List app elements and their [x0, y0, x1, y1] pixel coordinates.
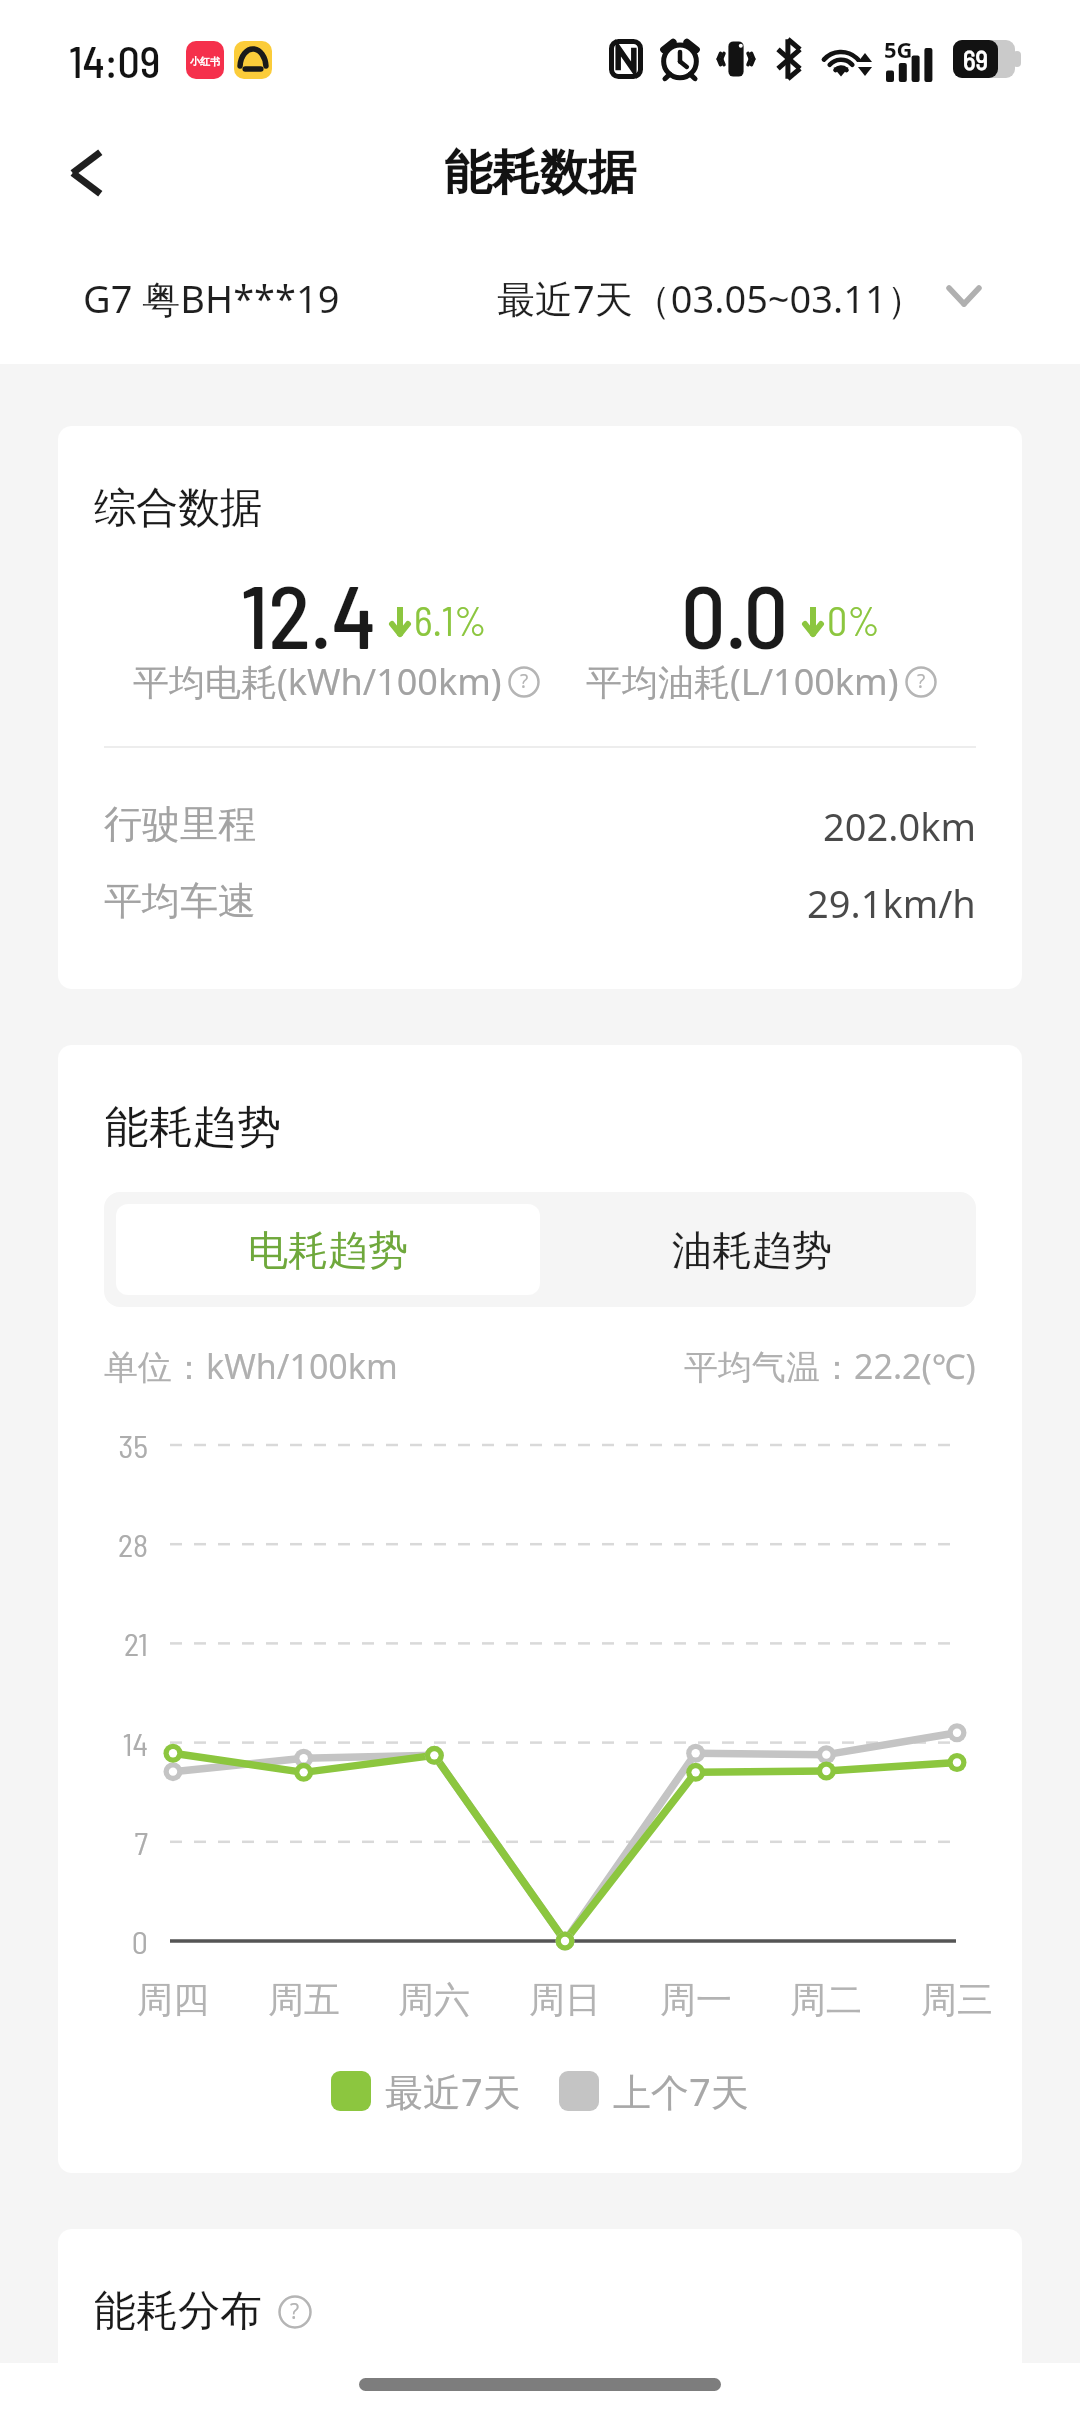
staticText: 5G — [884, 34, 913, 64]
staticText: 35 — [118, 1426, 148, 1464]
staticText: 平均车速 — [104, 877, 256, 925]
staticText: 29.1km/h — [807, 877, 976, 929]
staticText: 油耗趋势 — [672, 1225, 832, 1275]
staticText: 周日 — [529, 1977, 601, 2022]
staticText: 28 — [117, 1525, 148, 1563]
staticText: 202.0km — [823, 800, 976, 852]
staticText: 行驶里程 — [104, 800, 256, 848]
button[interactable]: 油耗趋势 — [540, 1204, 964, 1295]
staticText: 周四 — [137, 1977, 209, 2022]
staticText: 7 — [134, 1823, 148, 1861]
staticText: ? — [290, 2297, 300, 2326]
staticText: 周五 — [268, 1977, 340, 2022]
staticText: 6.1% — [414, 596, 487, 644]
staticText: 平均气温：22.2(℃) — [684, 1343, 976, 1389]
staticText: 周三 — [921, 1977, 993, 2022]
staticText: 上个7天 — [613, 2065, 749, 2117]
staticText: 14 — [122, 1724, 148, 1762]
staticText: 电耗趋势 — [248, 1225, 408, 1275]
staticText: 12.4 — [241, 561, 376, 657]
button[interactable]: Back — [56, 137, 128, 209]
staticText: 0% — [827, 596, 880, 644]
staticText: 平均电耗(kWh/100km) — [133, 657, 502, 706]
staticText: ? — [917, 668, 926, 694]
staticText: 0 — [131, 1922, 148, 1960]
staticText: 周二 — [790, 1977, 862, 2022]
button[interactable]: 电耗趋势 — [116, 1204, 540, 1295]
staticText: G7 粤BH***19 — [83, 272, 340, 324]
staticText: 最近7天 — [385, 2065, 521, 2117]
staticText: 周六 — [398, 1977, 470, 2022]
staticText: 平均油耗(L/100km) — [586, 657, 899, 706]
staticText: 14:09 — [69, 34, 161, 87]
staticText: 能耗数据 — [444, 143, 636, 203]
staticText: 能耗趋势 — [105, 1100, 281, 1155]
button[interactable]: 最近7天（03.05~03.11） — [497, 270, 981, 322]
staticText: 综合数据 — [94, 482, 262, 535]
staticText: 21 — [124, 1624, 148, 1662]
staticText: 能耗分布 — [94, 2285, 262, 2338]
staticText: 最近7天（03.05~03.11） — [497, 272, 925, 324]
staticText: 周一 — [660, 1977, 732, 2022]
staticText: ? — [520, 668, 529, 694]
staticText: 69 — [963, 43, 988, 75]
staticText: 小红书 — [190, 55, 220, 68]
staticText: 单位：kWh/100km — [104, 1343, 398, 1389]
staticText: 0.0 — [681, 561, 789, 657]
